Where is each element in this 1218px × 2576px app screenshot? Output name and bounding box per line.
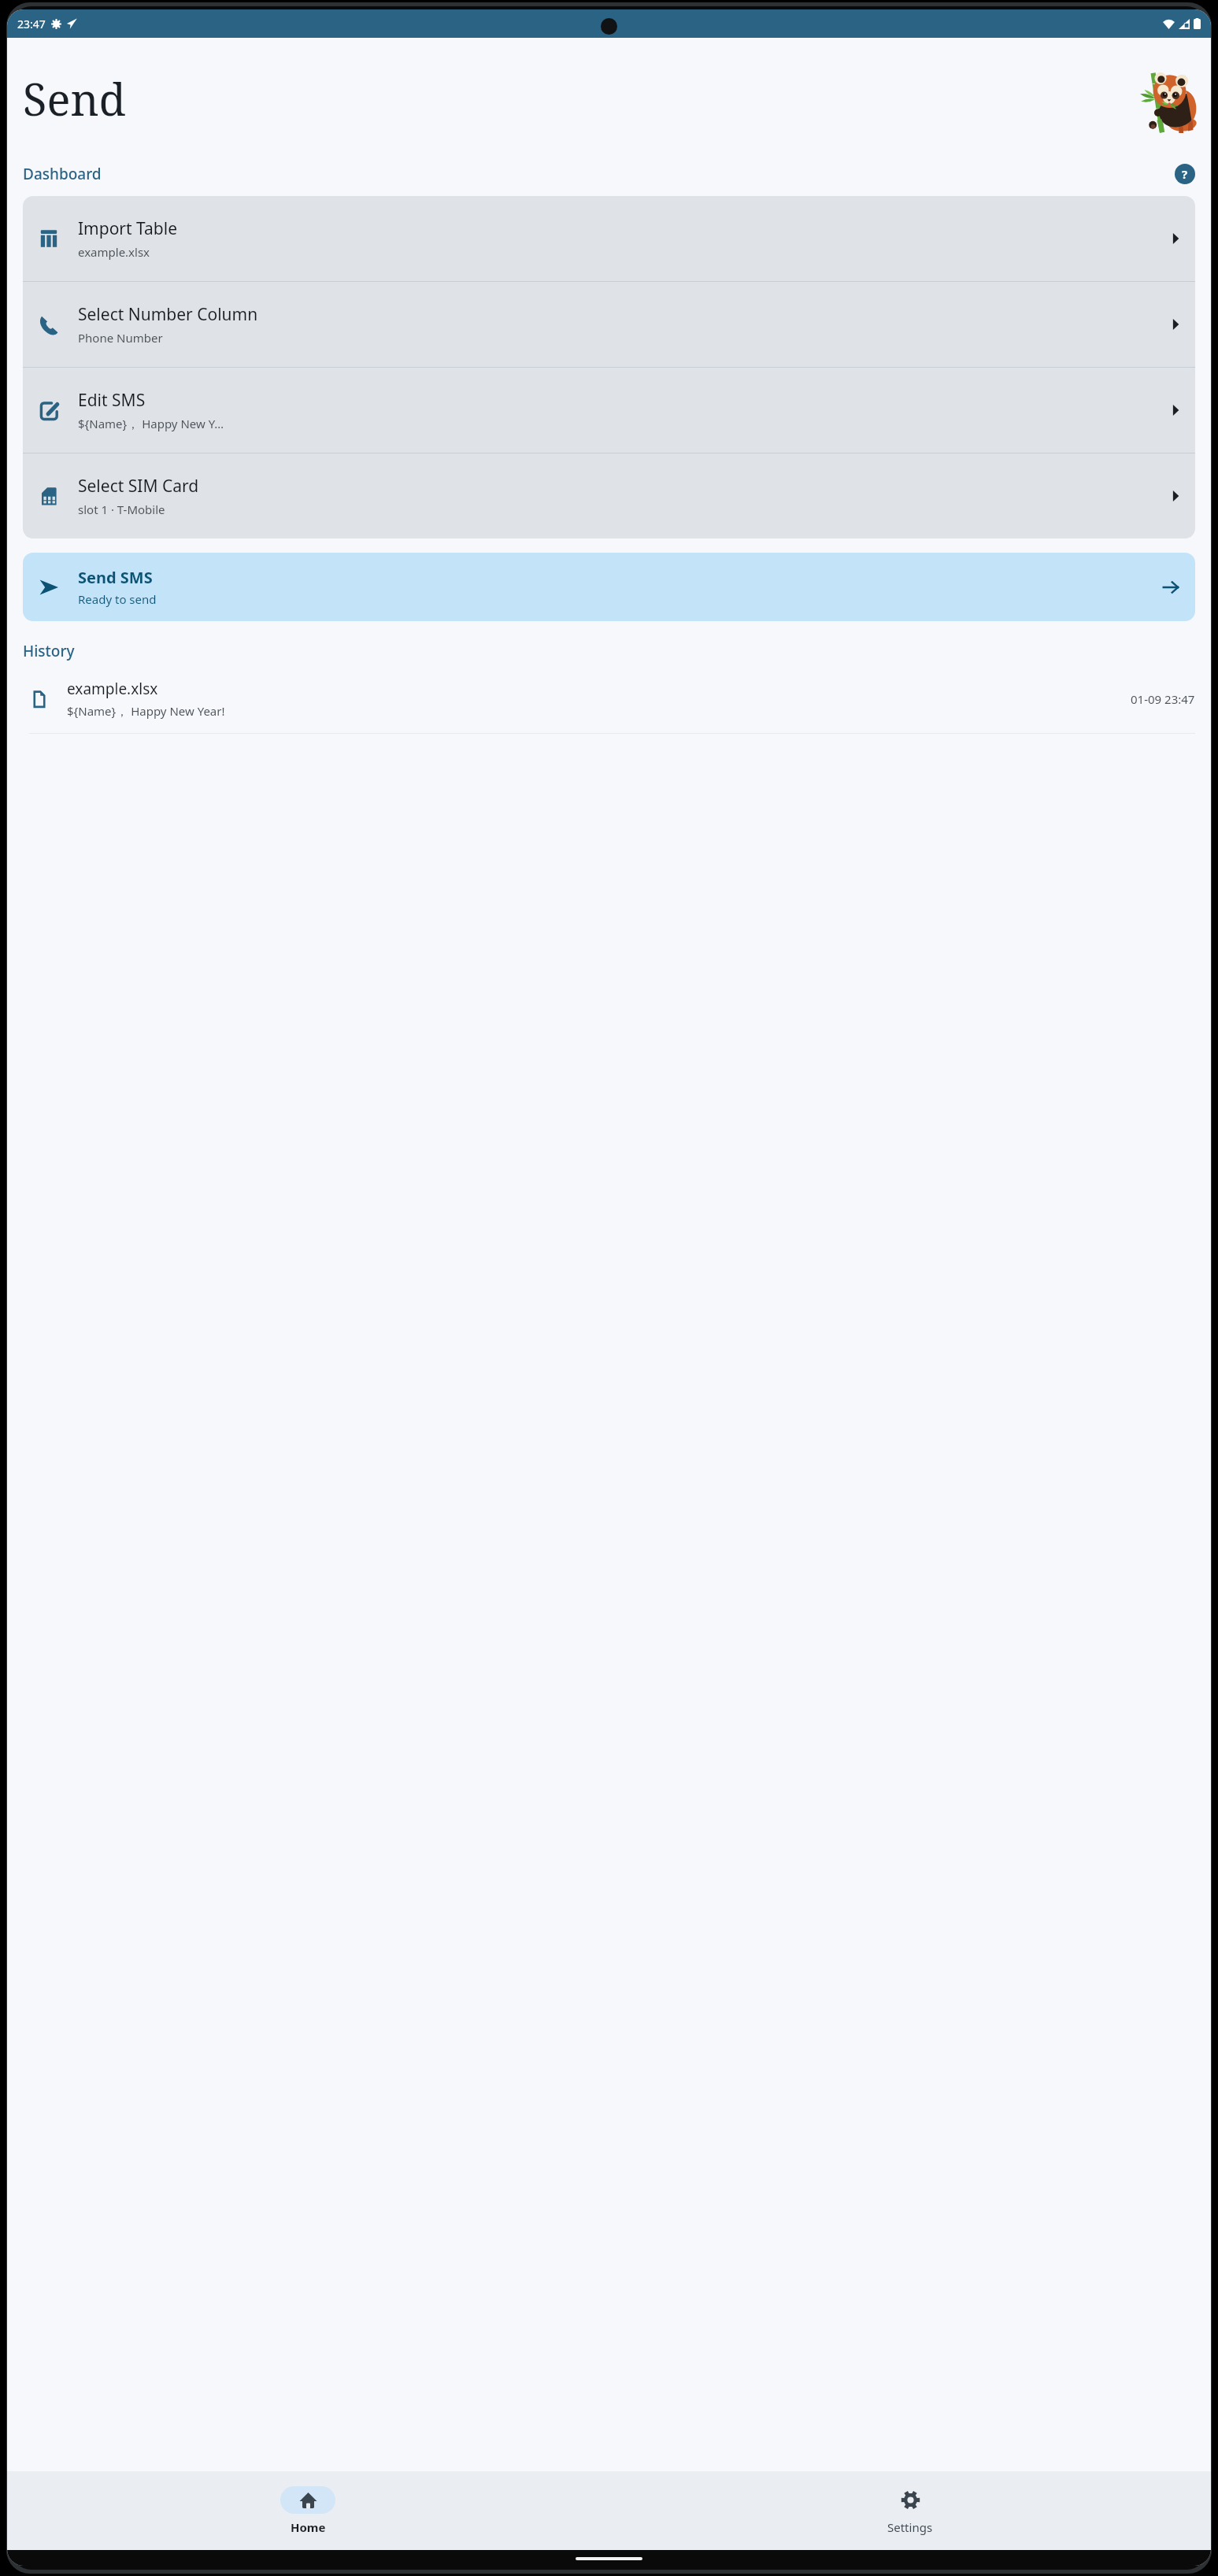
staticText: Ready to send [78,591,157,607]
staticText: ${Name}， Happy New Y… [78,416,224,431]
staticText: Settings [887,2519,933,2535]
button[interactable]: Settings [609,2471,1211,2550]
staticText: ${Name}， Happy New Year! [67,703,225,719]
staticText: Import Table [78,217,178,240]
staticText: example.xlsx [67,679,158,699]
staticText: ? [1182,166,1188,182]
staticText: Send [23,68,126,128]
button[interactable]: Help [1175,164,1195,184]
button[interactable]: Home [7,2471,609,2550]
staticText: Send SMS [78,567,153,588]
button[interactable]: Import Table [23,196,1195,281]
staticText: example.xlsx [78,244,150,260]
button[interactable]: example.xlsx [7,679,1211,719]
button[interactable]: Select Number Column [23,282,1195,367]
staticText: History [23,641,75,661]
staticText: slot 1 · T-Mobile [78,502,165,517]
staticText: Select SIM Card [78,475,199,498]
button[interactable]: Edit SMS [23,368,1195,453]
staticText: Phone Number [78,330,163,346]
staticText: Dashboard [23,164,102,184]
button[interactable]: Send SMS [23,553,1195,621]
staticText: 01-09 23:47 [1131,691,1195,707]
staticText: Select Number Column [78,303,258,326]
staticText: Edit SMS [78,389,146,412]
staticText: Home [291,2519,326,2535]
button[interactable]: Select SIM Card [23,453,1195,539]
staticText: 23:47 [17,17,46,31]
